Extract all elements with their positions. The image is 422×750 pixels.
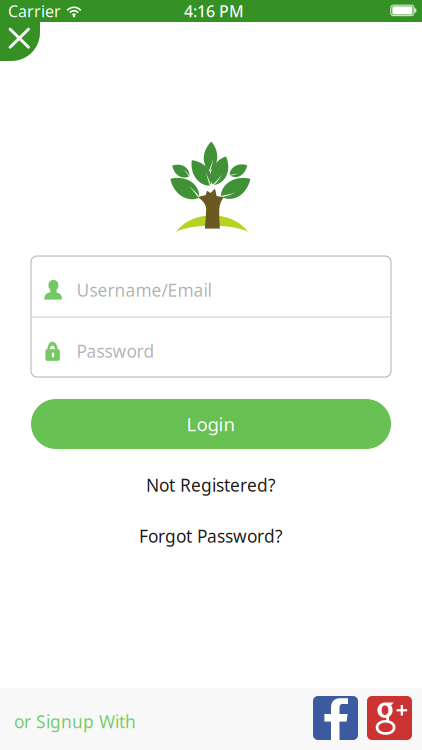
staticText: Not Registered? xyxy=(146,473,276,496)
staticText: Carrier xyxy=(8,0,61,22)
staticText: Forgot Password? xyxy=(139,524,283,547)
button[interactable]: Close xyxy=(0,20,40,61)
button[interactable]: Sign up with Google Plus xyxy=(367,696,412,740)
staticText: or Signup With xyxy=(14,710,136,733)
button[interactable]: Sign up with Facebook xyxy=(313,696,358,740)
staticText: Username/Email xyxy=(76,278,211,301)
button[interactable]: Login xyxy=(31,399,391,449)
button[interactable]: Not Registered? xyxy=(0,473,422,497)
staticText: 4:16 PM xyxy=(184,0,244,22)
staticText: Password xyxy=(76,339,154,362)
button[interactable]: Forgot Password? xyxy=(0,524,422,548)
staticText: Login xyxy=(186,412,235,436)
